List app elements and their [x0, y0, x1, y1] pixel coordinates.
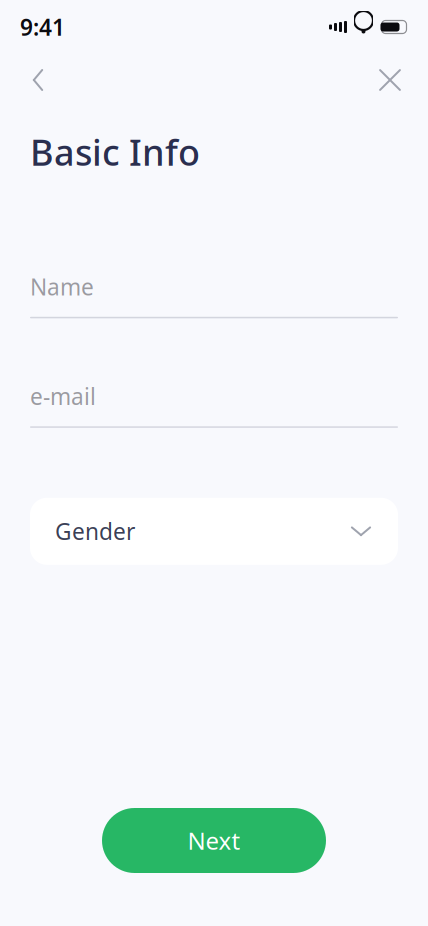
- staticText: e-mail: [30, 381, 96, 411]
- button[interactable]: Back: [10, 54, 66, 106]
- staticText: Basic Info: [30, 128, 200, 176]
- button[interactable]: Close: [362, 54, 418, 106]
- staticText: Gender: [55, 516, 135, 546]
- staticText: Next: [187, 825, 240, 856]
- button[interactable]: Gender: [30, 498, 398, 565]
- staticText: Name: [30, 272, 94, 302]
- staticText: 9:41: [20, 12, 65, 42]
- button[interactable]: Next: [102, 808, 326, 873]
